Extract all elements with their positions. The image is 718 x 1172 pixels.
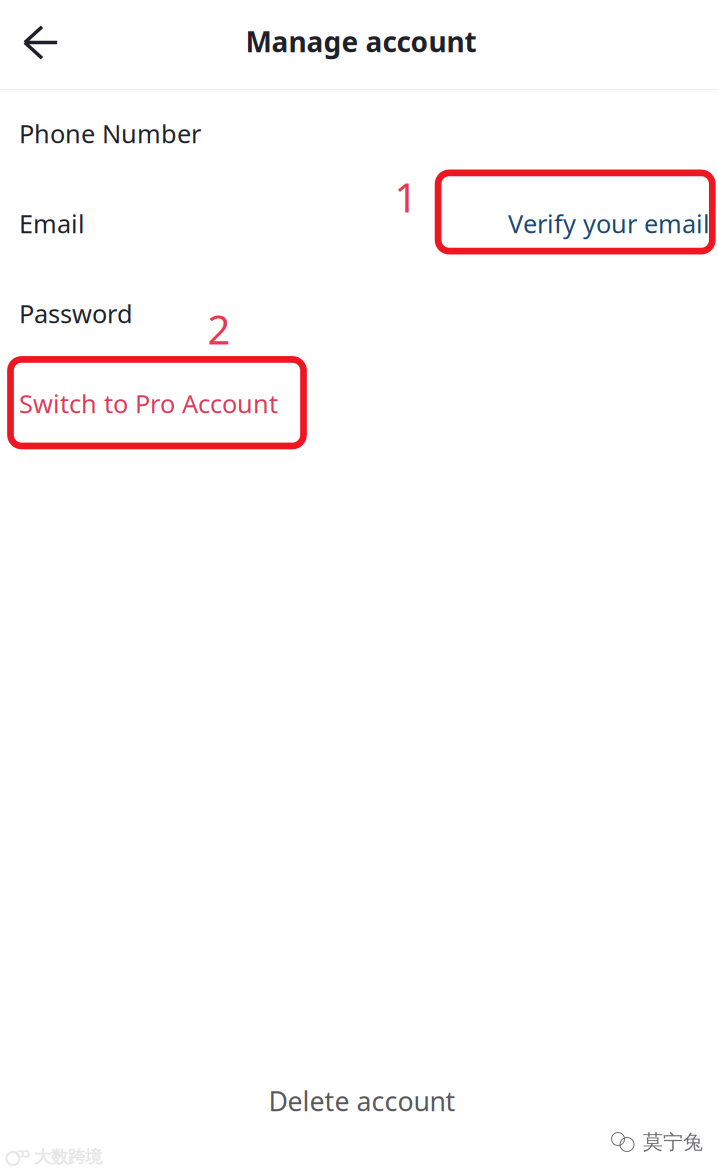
- staticText: Manage account: [245, 23, 476, 60]
- staticText: Verify your email: [508, 207, 710, 240]
- staticText: Delete account: [268, 1083, 455, 1119]
- staticText: Phone Number: [19, 117, 201, 150]
- button[interactable]: Phone Number: [0, 88, 718, 178]
- button[interactable]: Password: [0, 268, 718, 358]
- button[interactable]: Delete account: [0, 1072, 718, 1128]
- button[interactable]: Email: [0, 178, 508, 268]
- staticText: Switch to Pro Account: [19, 387, 278, 420]
- button[interactable]: Verify your email: [508, 178, 718, 268]
- button[interactable]: Back: [0, 0, 75, 86]
- staticText: Email: [19, 207, 85, 240]
- button[interactable]: Switch to Pro Account: [0, 358, 718, 448]
- staticText: Password: [19, 297, 133, 330]
